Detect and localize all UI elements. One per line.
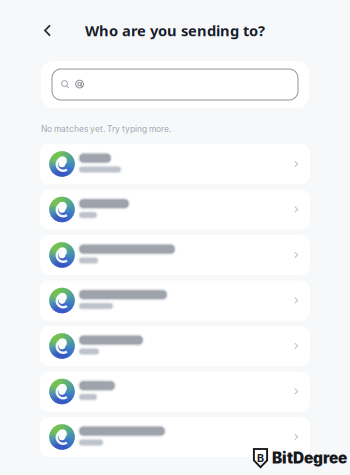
button[interactable]: Contact bbox=[40, 326, 310, 366]
button[interactable]: Contact bbox=[40, 417, 310, 457]
button[interactable]: Contact bbox=[40, 280, 310, 320]
button[interactable]: Contact bbox=[40, 371, 310, 411]
staticText: Who are you sending to? bbox=[85, 21, 265, 40]
button[interactable]: Contact bbox=[40, 144, 310, 184]
button[interactable]: Back bbox=[36, 18, 60, 42]
button[interactable]: Contact bbox=[40, 235, 310, 275]
staticText: BitDegree bbox=[272, 449, 347, 467]
staticText: No matches yet. Try typing more. bbox=[41, 124, 171, 134]
button[interactable]: Contact bbox=[40, 189, 310, 229]
staticText: B bbox=[257, 451, 264, 464]
